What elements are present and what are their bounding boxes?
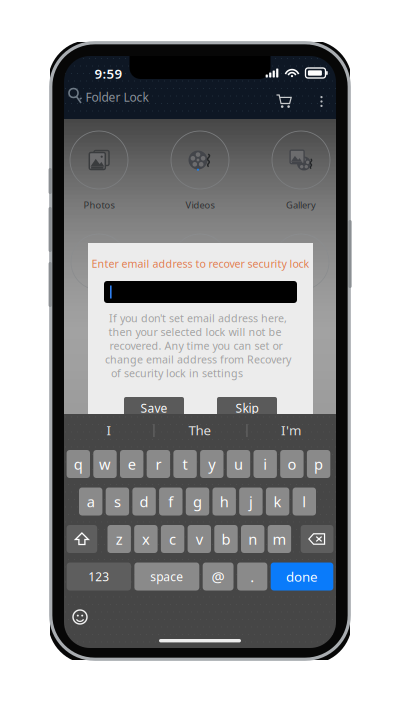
staticText: space — [150, 568, 183, 584]
button[interactable]: f — [159, 487, 182, 515]
staticText: Enter email address to recover security … — [91, 256, 309, 271]
staticText: a — [87, 492, 95, 511]
button[interactable]: Gallery — [253, 118, 349, 218]
staticText: of security lock in settings — [111, 366, 243, 380]
staticText: then your selected lock will not be — [108, 325, 281, 339]
staticText: y — [208, 454, 215, 474]
button[interactable]: done — [271, 562, 333, 590]
staticText: l — [302, 492, 306, 511]
staticText: i — [263, 454, 267, 474]
button[interactable]: @ — [203, 562, 233, 590]
staticText: k — [274, 492, 282, 511]
button[interactable]: I — [65, 417, 153, 443]
button[interactable]: x — [134, 525, 158, 553]
button[interactable]: Photos — [51, 118, 147, 218]
staticText: The — [188, 421, 211, 439]
staticText: o — [287, 454, 296, 474]
staticText: r — [155, 454, 161, 474]
button[interactable]: p — [307, 450, 330, 478]
button[interactable]: t — [173, 450, 197, 478]
staticText: @ — [212, 567, 225, 586]
staticText: t — [183, 454, 188, 474]
button[interactable]: e — [120, 450, 143, 478]
staticText: Save — [140, 400, 167, 416]
staticText: recovered. Any time you can set or — [109, 338, 282, 353]
button[interactable]: b — [214, 525, 238, 553]
button[interactable]: m — [268, 525, 291, 553]
button[interactable]: z — [107, 525, 131, 553]
button[interactable]: Cart — [271, 88, 297, 114]
staticText: If you don't set email address here, — [109, 311, 287, 325]
button[interactable]: j — [239, 487, 263, 515]
staticText: z — [116, 529, 123, 549]
button[interactable]: n — [241, 525, 264, 553]
button[interactable]: h — [212, 487, 236, 515]
staticText: 123 — [88, 568, 109, 584]
button[interactable]: Skip — [217, 397, 277, 419]
button[interactable]: d — [132, 487, 156, 515]
staticText: g — [193, 492, 202, 511]
staticText: q — [74, 454, 83, 474]
staticText: u — [234, 454, 243, 474]
button[interactable]: u — [227, 450, 250, 478]
button[interactable]: q — [67, 450, 90, 478]
button[interactable]: l — [293, 487, 316, 515]
button[interactable]: a — [79, 487, 102, 515]
staticText: h — [220, 492, 229, 511]
button[interactable]: c — [161, 525, 184, 553]
button[interactable]: s — [106, 487, 129, 515]
staticText: m — [272, 529, 286, 549]
staticText: I'm — [281, 421, 301, 439]
staticText: p — [314, 454, 323, 474]
staticText: e — [128, 454, 136, 474]
staticText: change email address from Recovery — [105, 352, 291, 366]
button[interactable]: k — [266, 487, 289, 515]
button[interactable]: Save — [124, 397, 184, 419]
staticText: Gallery — [286, 199, 316, 211]
staticText: done — [286, 568, 318, 585]
button[interactable]: I'm — [247, 417, 335, 443]
button[interactable]: Emoji — [67, 604, 93, 630]
button[interactable]: w — [93, 450, 117, 478]
staticText: w — [99, 454, 111, 474]
staticText: I — [106, 421, 111, 439]
staticText: Photos — [83, 199, 114, 211]
staticText: . — [250, 567, 254, 586]
button[interactable]: . — [237, 562, 267, 590]
staticText: c — [169, 529, 176, 549]
button[interactable]: i — [253, 450, 277, 478]
button[interactable]: Shift — [67, 525, 97, 553]
button[interactable]: space — [134, 562, 199, 590]
staticText: v — [196, 529, 203, 549]
button[interactable]: g — [186, 487, 209, 515]
staticText: b — [221, 529, 230, 549]
staticText: 9:59 — [94, 65, 122, 82]
staticText: d — [140, 492, 149, 511]
staticText: s — [114, 492, 121, 511]
button[interactable]: r — [147, 450, 170, 478]
staticText: Videos — [185, 199, 214, 211]
button[interactable]: Backspace — [301, 525, 333, 553]
staticText: j — [249, 492, 253, 511]
button[interactable]: Videos — [152, 118, 248, 218]
button[interactable]: 123 — [67, 562, 131, 590]
staticText: x — [142, 529, 150, 549]
button[interactable]: v — [188, 525, 211, 553]
button[interactable]: y — [200, 450, 223, 478]
staticText: n — [248, 529, 257, 549]
button[interactable]: o — [280, 450, 304, 478]
staticText: Folder Lock — [85, 89, 148, 105]
button[interactable]: The — [156, 417, 244, 443]
staticText: Skip — [235, 400, 258, 416]
staticText: f — [168, 492, 173, 511]
button[interactable]: More options — [311, 89, 331, 113]
